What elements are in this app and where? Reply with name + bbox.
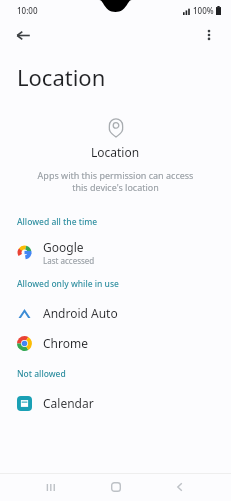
button[interactable]: Calendar: [0, 388, 231, 418]
staticText: Location: [17, 62, 106, 92]
staticText: Allowed only while in use: [17, 278, 119, 290]
staticText: Google: [43, 239, 84, 255]
button[interactable]: Android Auto: [0, 298, 231, 328]
button[interactable]: More options: [195, 21, 223, 49]
staticText: Allowed all the time: [17, 216, 98, 228]
button[interactable]: Home: [102, 473, 130, 501]
staticText: Chrome: [43, 335, 88, 351]
button[interactable]: Google: [0, 236, 231, 268]
button[interactable]: Recents: [37, 473, 65, 501]
staticText: Location: [91, 144, 140, 160]
staticText: Android Auto: [43, 305, 118, 321]
staticText: Apps with this permission can access thi…: [34, 169, 197, 194]
button[interactable]: Back: [8, 20, 38, 50]
button[interactable]: Back: [166, 473, 194, 501]
staticText: 100%: [193, 5, 214, 16]
staticText: Calendar: [43, 395, 94, 411]
staticText: Not allowed: [17, 368, 66, 380]
button[interactable]: Chrome: [0, 328, 231, 358]
staticText: 10:00: [17, 5, 38, 16]
staticText: Last accessed: [43, 255, 95, 266]
